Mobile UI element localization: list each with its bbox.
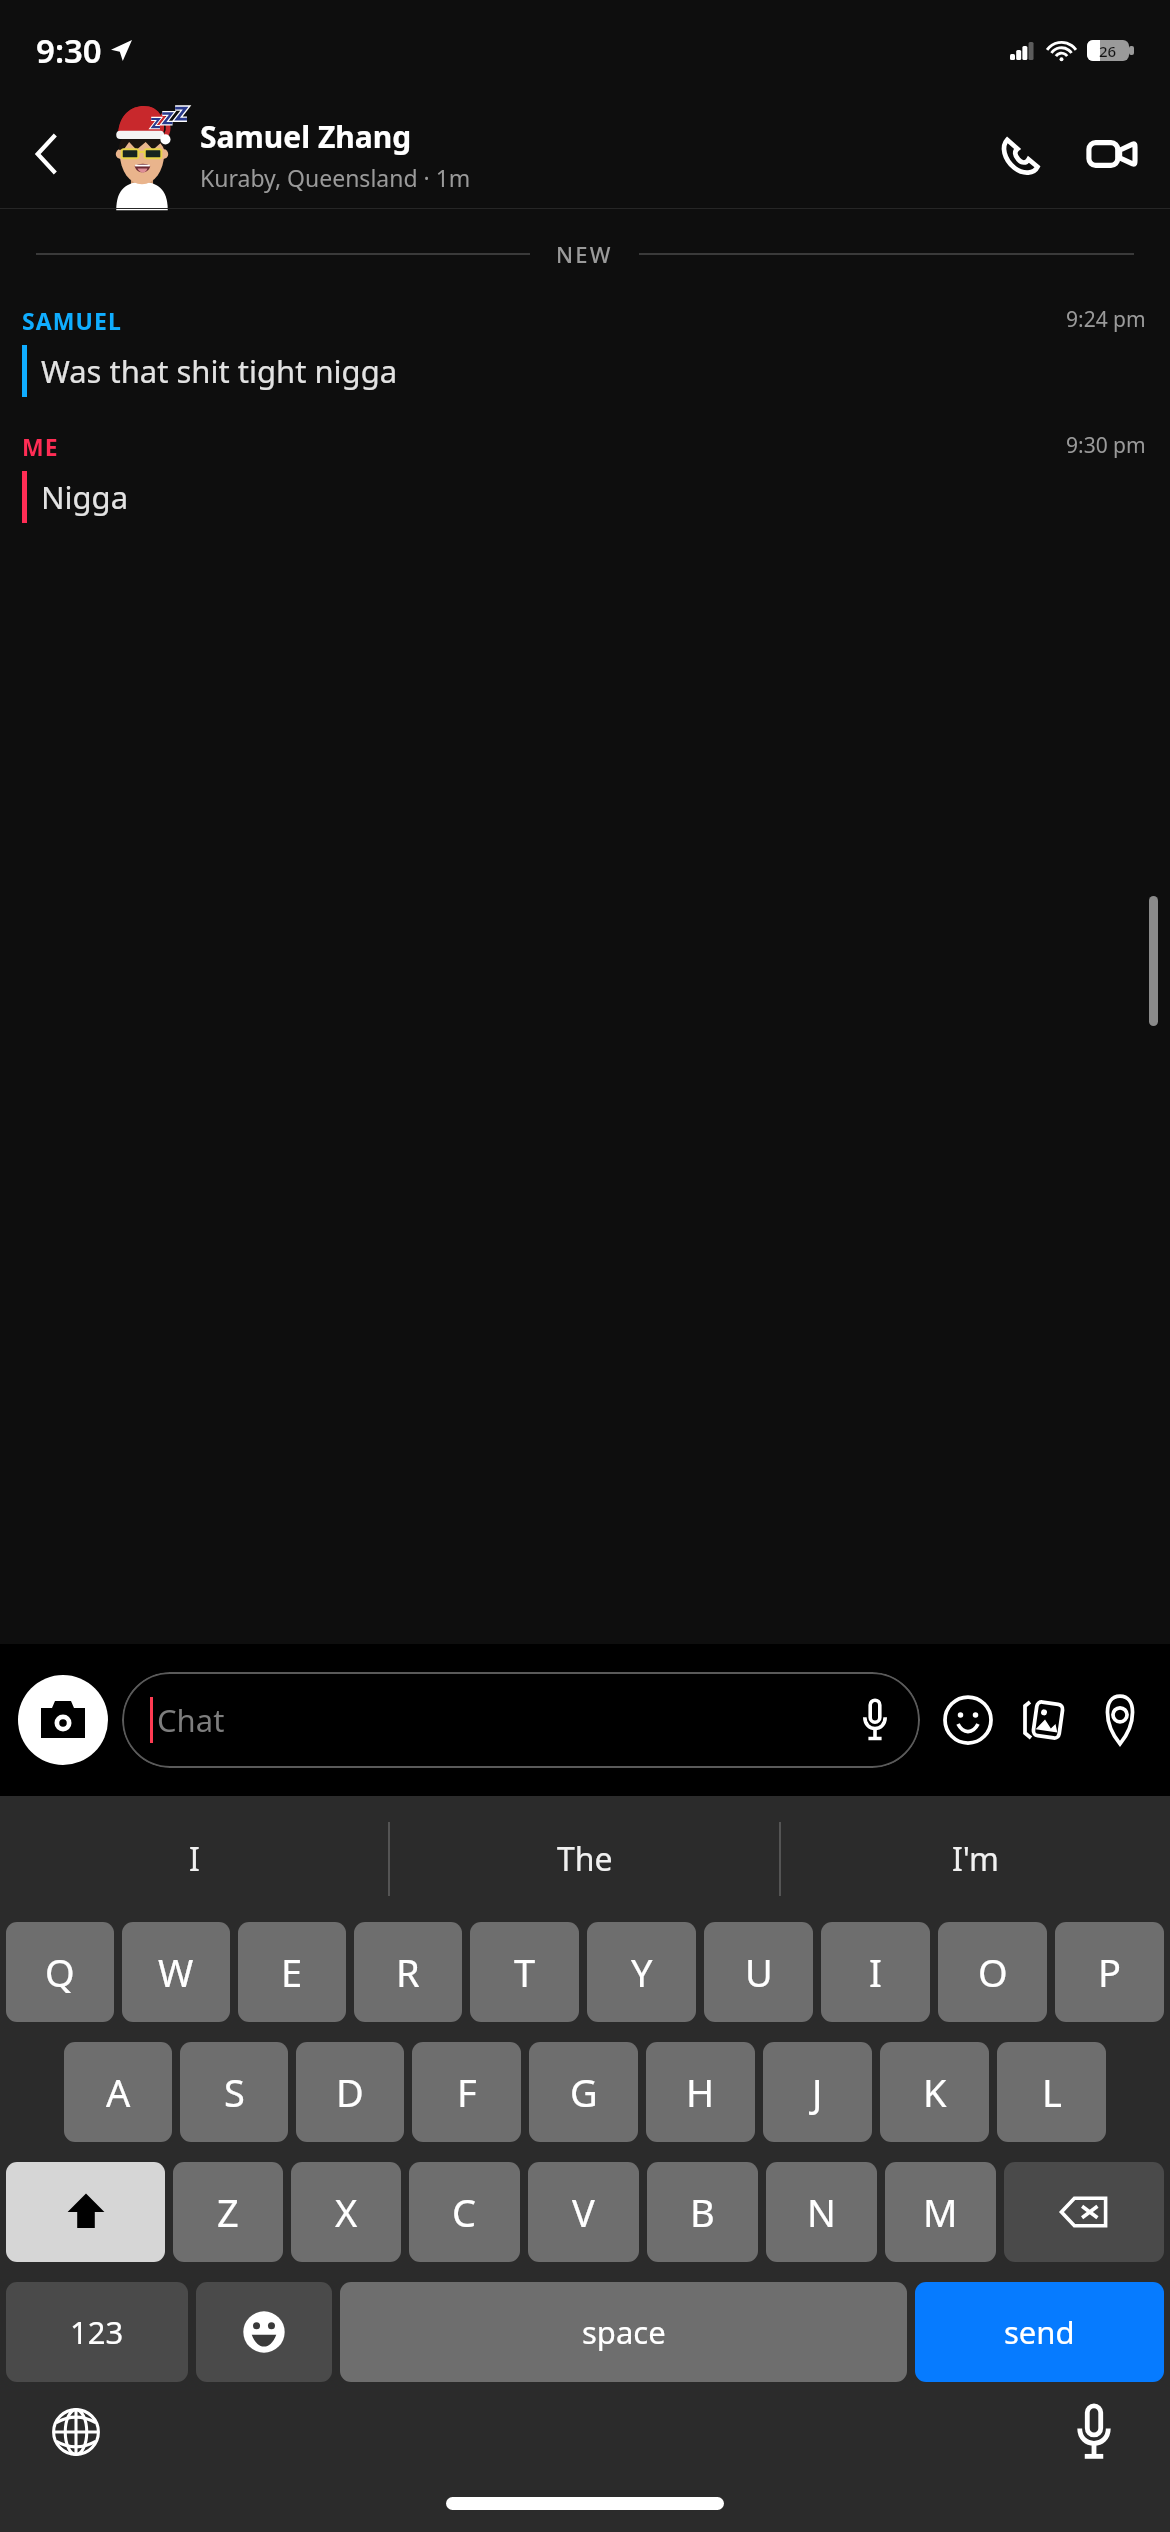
staticText: Nigga	[41, 476, 129, 518]
button[interactable]: Shift	[6, 2162, 165, 2262]
button[interactable]: X	[291, 2162, 401, 2262]
staticText: W	[158, 1946, 194, 1998]
button[interactable]: ME	[0, 431, 1170, 523]
staticText: Q	[45, 1946, 75, 1998]
button[interactable]: Voice note	[844, 1689, 906, 1751]
staticText: G	[570, 2066, 598, 2118]
staticText: Chat	[157, 1699, 225, 1741]
staticText: Kuraby, Queensland · 1m	[200, 162, 471, 193]
staticText: F	[457, 2066, 477, 2118]
button[interactable]: P	[1055, 1922, 1164, 2022]
staticText: The	[557, 1837, 613, 1881]
staticText: K	[923, 2066, 947, 2118]
staticText: H	[686, 2066, 715, 2118]
staticText: Z	[217, 2186, 239, 2238]
staticText: 26	[1099, 41, 1117, 61]
button[interactable]: Samuel Zhang	[96, 100, 471, 208]
button[interactable]: I'm	[781, 1796, 1170, 1922]
staticText: U	[745, 1946, 773, 1998]
staticText: E	[281, 1946, 303, 1998]
button[interactable]: Backspace	[1004, 2162, 1164, 2262]
staticText: M	[923, 2186, 958, 2238]
staticText: X	[335, 2186, 358, 2238]
staticText: T	[514, 1946, 536, 1998]
button[interactable]: 123	[6, 2282, 188, 2382]
staticText: I	[869, 1946, 882, 1998]
staticText: N	[807, 2186, 836, 2238]
staticText: R	[396, 1946, 420, 1998]
staticText: send	[1004, 2311, 1075, 2353]
button[interactable]: E	[238, 1922, 346, 2022]
button[interactable]: D	[296, 2042, 404, 2142]
button[interactable]: W	[122, 1922, 230, 2022]
staticText: Was that shit tight nigga	[41, 350, 398, 392]
button[interactable]: Emoji	[196, 2282, 332, 2382]
staticText: 9:30	[36, 28, 102, 73]
button[interactable]: Saved stickers	[1006, 1682, 1082, 1758]
button[interactable]: SAMUEL	[0, 305, 1170, 397]
staticText: 9:24 pm	[1066, 305, 1146, 334]
button[interactable]: Change keyboard	[36, 2392, 116, 2472]
button[interactable]: C	[409, 2162, 520, 2262]
button[interactable]: T	[470, 1922, 579, 2022]
button[interactable]: Stickers	[930, 1682, 1006, 1758]
button[interactable]: N	[766, 2162, 877, 2262]
button[interactable]: Q	[6, 1922, 114, 2022]
staticText: 9:30 pm	[1066, 431, 1146, 460]
button[interactable]: F	[412, 2042, 521, 2142]
button[interactable]: Dictation	[1054, 2392, 1134, 2472]
button[interactable]: I	[0, 1796, 388, 1922]
button[interactable]: Y	[587, 1922, 696, 2022]
button[interactable]: Camera	[18, 1675, 108, 1765]
staticText: J	[812, 2066, 823, 2118]
staticText: P	[1098, 1946, 1121, 1998]
button[interactable]: I	[821, 1922, 930, 2022]
staticText: NEW	[556, 239, 613, 269]
staticText: I	[189, 1837, 200, 1881]
button[interactable]: H	[646, 2042, 755, 2142]
button[interactable]: The	[390, 1796, 779, 1922]
staticText: D	[336, 2066, 364, 2118]
button[interactable]: R	[354, 1922, 462, 2022]
button[interactable]: V	[528, 2162, 639, 2262]
button[interactable]: B	[647, 2162, 758, 2262]
button[interactable]: Z	[173, 2162, 283, 2262]
button[interactable]: M	[885, 2162, 996, 2262]
button[interactable]: send	[915, 2282, 1164, 2382]
staticText: 123	[70, 2311, 124, 2353]
button[interactable]: Video call	[1074, 117, 1148, 191]
staticText: B	[690, 2186, 715, 2238]
staticText: S	[224, 2066, 245, 2118]
button[interactable]: Back	[18, 126, 74, 182]
staticText: SAMUEL	[22, 305, 123, 336]
button[interactable]: J	[763, 2042, 872, 2142]
button[interactable]: Chat	[122, 1672, 920, 1768]
button[interactable]: G	[529, 2042, 638, 2142]
staticText: I'm	[952, 1837, 1000, 1881]
button[interactable]: O	[938, 1922, 1047, 2022]
staticText: O	[978, 1946, 1008, 1998]
button[interactable]: A	[64, 2042, 172, 2142]
button[interactable]: S	[180, 2042, 288, 2142]
button[interactable]: Voice call	[982, 117, 1056, 191]
staticText: C	[452, 2186, 477, 2238]
staticText: Y	[631, 1946, 653, 1998]
staticText: A	[106, 2066, 131, 2118]
button[interactable]: K	[880, 2042, 989, 2142]
button[interactable]: L	[997, 2042, 1106, 2142]
staticText: space	[582, 2311, 666, 2353]
staticText: V	[572, 2186, 595, 2238]
staticText: L	[1042, 2066, 1062, 2118]
button[interactable]: Location	[1082, 1682, 1158, 1758]
button[interactable]: space	[340, 2282, 907, 2382]
button[interactable]: U	[704, 1922, 813, 2022]
staticText: ME	[22, 431, 59, 462]
staticText: Samuel Zhang	[200, 116, 412, 157]
